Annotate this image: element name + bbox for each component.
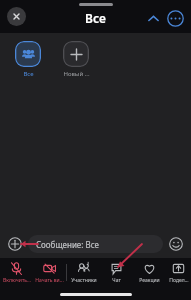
staticText: Включить... bbox=[3, 277, 31, 284]
staticText: Новый ... bbox=[63, 70, 90, 78]
button[interactable]: Подел... bbox=[166, 262, 191, 284]
staticText: Подел... bbox=[169, 277, 189, 284]
button[interactable]: Сообщение: Все bbox=[28, 235, 163, 253]
button[interactable]: Все bbox=[9, 41, 47, 78]
button[interactable]: Ещё bbox=[165, 8, 185, 28]
staticText: Реакции bbox=[139, 277, 160, 284]
staticText: Участники bbox=[71, 277, 97, 284]
staticText: Сообщение: Все bbox=[36, 239, 99, 250]
staticText: Начать ви... bbox=[35, 277, 64, 284]
button[interactable]: Реакции bbox=[133, 262, 166, 284]
staticText: Все bbox=[23, 70, 34, 78]
button[interactable]: Свернуть bbox=[143, 8, 163, 28]
button[interactable]: Новый ... bbox=[57, 41, 95, 78]
button[interactable]: Включить... bbox=[0, 262, 33, 284]
button[interactable]: Участники bbox=[67, 262, 100, 284]
button[interactable]: Эмодзи bbox=[166, 234, 186, 254]
button[interactable]: Чат bbox=[100, 262, 133, 284]
staticText: Все bbox=[85, 10, 106, 26]
staticText: Чат bbox=[112, 277, 121, 284]
button[interactable]: Закрыть bbox=[7, 7, 26, 26]
button[interactable]: Добавить bbox=[5, 234, 25, 254]
button[interactable]: Начать ви... bbox=[33, 262, 66, 284]
